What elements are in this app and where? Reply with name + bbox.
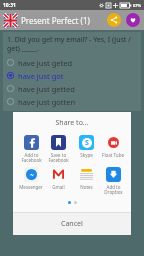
button[interactable]: have just got bbox=[7, 69, 137, 82]
staticText: have just got bbox=[18, 71, 64, 81]
staticText: 67% bbox=[133, 3, 142, 8]
staticText: 1. Did you get my email? - Yes, I (just … bbox=[7, 35, 137, 53]
staticText: 10:31 bbox=[3, 2, 16, 9]
button[interactable]: Save to Facebook bbox=[45, 135, 71, 164]
staticText: have just getted bbox=[18, 84, 75, 94]
button[interactable]: Favorite bbox=[126, 13, 140, 27]
button[interactable]: Float Tube bbox=[100, 135, 126, 158]
staticText: Save to Facebook bbox=[48, 152, 69, 164]
button[interactable]: have just geted bbox=[7, 56, 137, 69]
button[interactable]: Add to Dropbox bbox=[100, 167, 126, 196]
button[interactable]: have just gotten bbox=[7, 95, 137, 108]
staticText: Present Perfect (1) bbox=[21, 15, 90, 26]
button[interactable]: Share bbox=[107, 13, 121, 27]
staticText: have just geted bbox=[18, 58, 73, 68]
staticText: Share to... bbox=[13, 118, 131, 128]
button[interactable]: Cancel bbox=[13, 213, 131, 235]
staticText: have just gotten bbox=[18, 97, 76, 107]
staticText: S bbox=[85, 138, 89, 148]
staticText: Gmail bbox=[52, 184, 65, 190]
button[interactable]: Gmail bbox=[45, 167, 71, 190]
staticText: Skype bbox=[80, 152, 93, 158]
staticText: Float Tube bbox=[102, 152, 124, 158]
button[interactable]: S bbox=[73, 135, 99, 158]
button[interactable]: Messenger bbox=[18, 167, 44, 190]
staticText: Messenger bbox=[19, 184, 43, 190]
staticText: Notes bbox=[80, 184, 93, 190]
staticText: Add to Facebook bbox=[21, 152, 42, 164]
button[interactable]: Add to Facebook bbox=[18, 135, 44, 164]
button[interactable]: Notes bbox=[73, 167, 99, 190]
button[interactable]: have just getted bbox=[7, 82, 137, 95]
staticText: Add to Dropbox bbox=[104, 184, 123, 196]
staticText: Cancel bbox=[61, 219, 83, 229]
